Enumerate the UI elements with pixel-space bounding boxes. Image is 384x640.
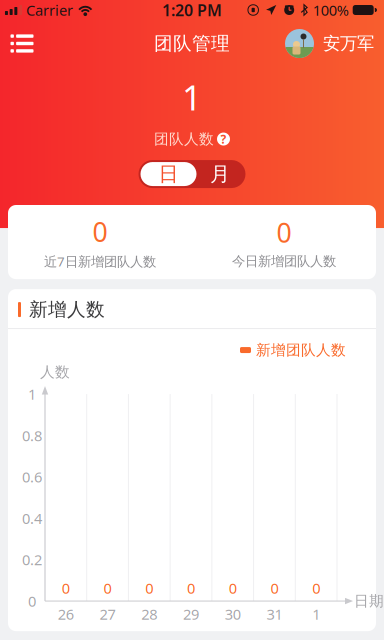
staticText: 0 bbox=[104, 578, 112, 598]
staticText: 近7日新增团队人数 bbox=[44, 252, 156, 270]
staticText: 0 bbox=[312, 578, 320, 598]
staticText: Carrier bbox=[26, 0, 73, 20]
staticText: 0.4 bbox=[22, 508, 42, 528]
staticText: 日期 bbox=[354, 592, 384, 610]
staticText: 安万军 bbox=[323, 33, 374, 54]
staticText: ? bbox=[220, 131, 226, 147]
staticText: 新增团队人数 bbox=[256, 341, 346, 359]
staticText: 100% bbox=[313, 0, 349, 20]
button[interactable]: 日 bbox=[140, 162, 196, 186]
staticText: 0.8 bbox=[22, 426, 42, 445]
staticText: 团队人数 bbox=[154, 130, 214, 148]
staticText: 0 bbox=[92, 214, 107, 249]
staticText: 1:20 PM bbox=[162, 0, 222, 21]
staticText: 0 bbox=[270, 578, 278, 598]
staticText: 0 bbox=[276, 215, 291, 250]
button[interactable]: 团队人数说明 bbox=[217, 132, 230, 145]
button[interactable]: 安万军 bbox=[275, 20, 384, 67]
staticText: 0 bbox=[229, 578, 237, 598]
staticText: 31 bbox=[266, 604, 282, 624]
staticText: 人数 bbox=[40, 363, 70, 381]
staticText: 0 bbox=[187, 578, 195, 598]
staticText: 1 bbox=[182, 74, 202, 120]
staticText: 26 bbox=[58, 604, 74, 624]
staticText: 0 bbox=[28, 591, 36, 611]
staticText: 29 bbox=[183, 604, 199, 624]
staticText: 1 bbox=[312, 604, 320, 624]
button[interactable]: 菜单 bbox=[0, 20, 44, 67]
staticText: 0 bbox=[62, 578, 70, 598]
staticText: 27 bbox=[100, 604, 116, 624]
staticText: 30 bbox=[225, 604, 241, 624]
staticText: 0.6 bbox=[22, 467, 42, 487]
button[interactable]: 月 bbox=[196, 162, 243, 186]
staticText: 今日新增团队人数 bbox=[232, 253, 336, 269]
staticText: 1 bbox=[28, 384, 36, 404]
staticText: 0.2 bbox=[22, 550, 42, 569]
staticText: 团队管理 bbox=[154, 32, 230, 55]
staticText: 28 bbox=[141, 604, 157, 624]
staticText: 0 bbox=[145, 578, 153, 598]
staticText: 新增人数 bbox=[29, 298, 105, 321]
staticText: 日 bbox=[158, 162, 178, 186]
staticText: 月 bbox=[210, 162, 230, 186]
